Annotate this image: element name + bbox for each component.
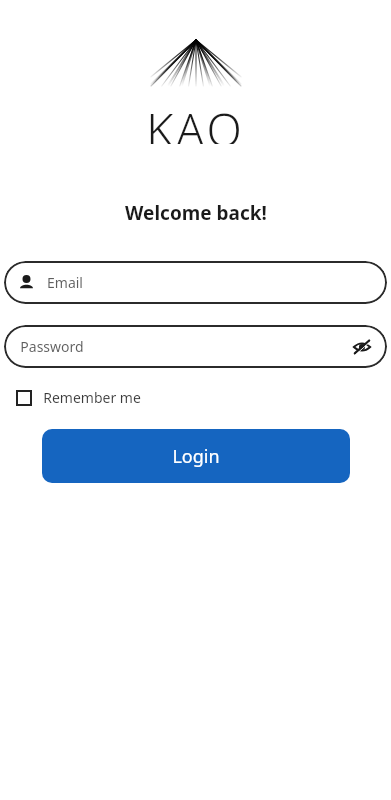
staticText: Password <box>20 337 84 356</box>
staticText: Welcome back! <box>125 200 267 226</box>
button[interactable]: Password <box>4 325 387 368</box>
staticText: Email <box>47 273 83 292</box>
staticText: Remember me <box>43 388 141 407</box>
button[interactable]: Login <box>42 429 350 483</box>
button[interactable]: Email <box>4 261 387 304</box>
staticText: Login <box>172 444 220 469</box>
button[interactable]: Show password <box>351 336 373 358</box>
button[interactable]: Remember me <box>10 383 149 412</box>
staticText: KAO <box>146 98 245 144</box>
